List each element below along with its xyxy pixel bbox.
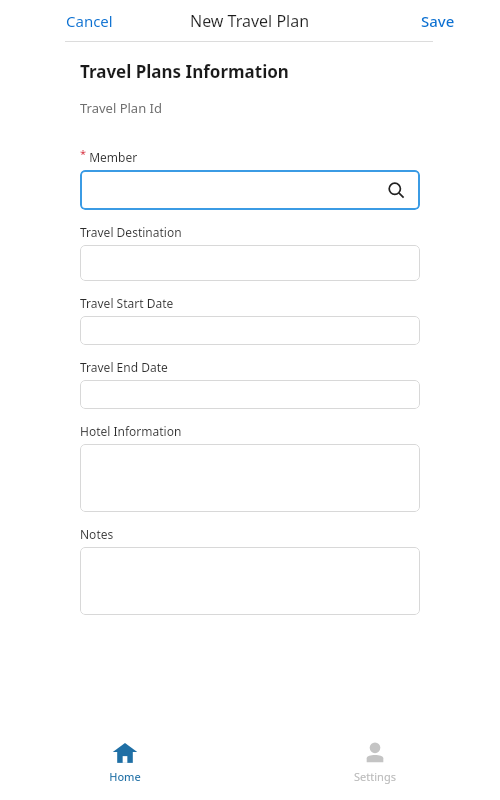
- button[interactable]: [80, 245, 420, 281]
- staticText: Notes: [80, 526, 114, 542]
- staticText: Travel Plan Id: [80, 99, 162, 117]
- button[interactable]: [80, 444, 420, 512]
- button[interactable]: Settings: [250, 722, 500, 800]
- staticText: * Member: [80, 146, 138, 165]
- staticText: Home: [109, 769, 141, 784]
- button[interactable]: Search member: [384, 178, 408, 202]
- staticText: Hotel Information: [80, 423, 182, 439]
- staticText: New Travel Plan: [190, 10, 310, 32]
- button[interactable]: Cancel: [66, 11, 113, 31]
- button[interactable]: Search member: [80, 170, 420, 210]
- button[interactable]: Save: [421, 11, 455, 31]
- button[interactable]: Home: [0, 722, 250, 800]
- button[interactable]: [80, 316, 420, 345]
- staticText: Travel Plans Information: [80, 60, 289, 83]
- staticText: Travel End Date: [80, 359, 168, 375]
- staticText: Settings: [354, 769, 396, 784]
- staticText: Save: [421, 11, 455, 31]
- staticText: Travel Start Date: [80, 295, 174, 311]
- staticText: Travel Destination: [80, 224, 182, 240]
- staticText: Cancel: [66, 11, 113, 31]
- button[interactable]: [80, 380, 420, 409]
- button[interactable]: [80, 547, 420, 615]
